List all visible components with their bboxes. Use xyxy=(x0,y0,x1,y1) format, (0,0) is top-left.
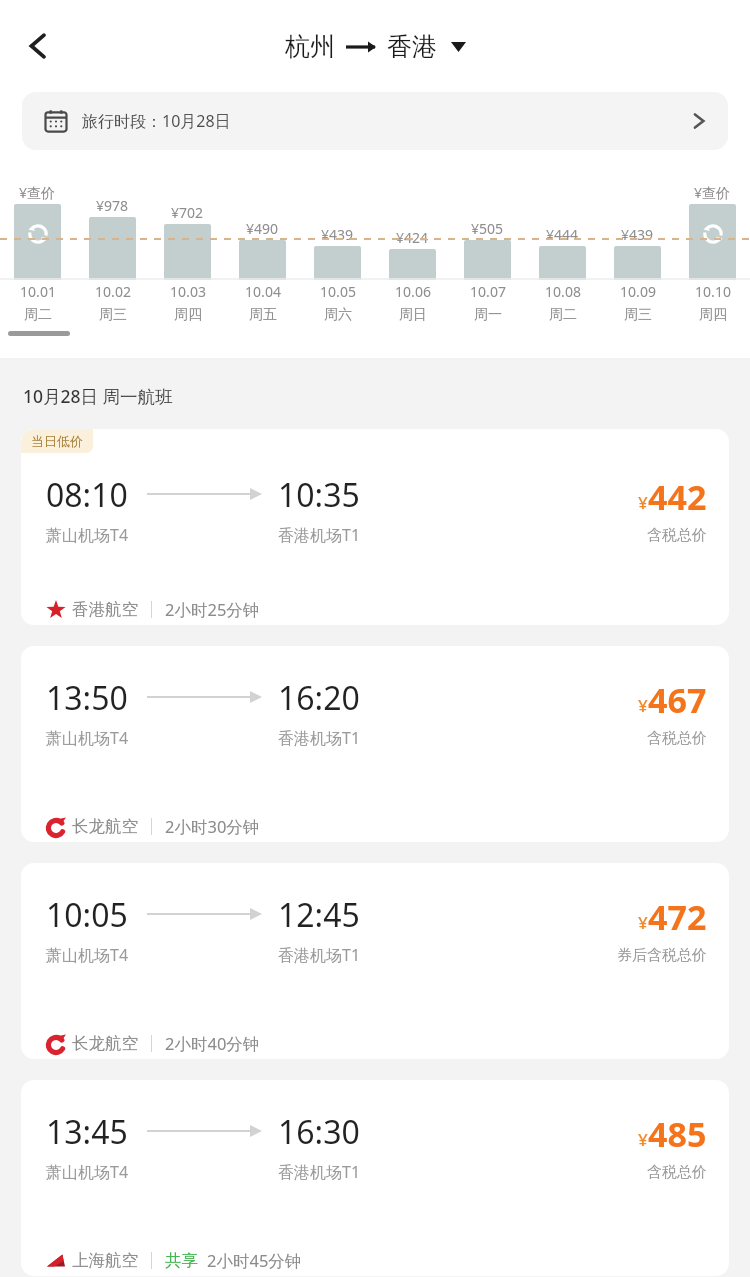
staticText: 周五 xyxy=(249,306,277,324)
staticText: 香港 xyxy=(387,31,437,62)
button[interactable]: 13:45 xyxy=(21,1080,729,1276)
button[interactable]: ¥查价 xyxy=(675,150,750,280)
staticText: 周四 xyxy=(699,306,727,324)
staticText: 16:20 xyxy=(278,676,360,720)
button[interactable]: 当日低价 xyxy=(21,429,729,625)
staticText: 16:30 xyxy=(278,1110,360,1154)
button[interactable]: ¥505 xyxy=(450,150,525,280)
staticText: 香港机场T1 xyxy=(278,944,361,966)
staticText: ¥439 xyxy=(621,225,654,244)
staticText: 485 xyxy=(648,1111,707,1157)
staticText: 12:45 xyxy=(278,893,360,937)
staticText: 10:05 xyxy=(46,893,128,937)
staticText: 香港机场T1 xyxy=(278,1161,361,1183)
staticText: 周四 xyxy=(174,306,202,324)
staticText: 13:45 xyxy=(46,1110,128,1154)
button[interactable]: 旅行时段：10月28日 xyxy=(22,92,728,150)
staticText: 含税总价 xyxy=(647,1163,707,1182)
staticText: 2小时25分钟 xyxy=(165,598,260,621)
staticText: 10.04 xyxy=(245,282,281,301)
staticText: 周三 xyxy=(624,306,652,324)
staticText: 10.07 xyxy=(470,282,506,301)
staticText: 香港机场T1 xyxy=(278,524,361,546)
staticText: 香港航空 xyxy=(72,599,138,620)
staticText: 杭州 xyxy=(285,31,335,62)
button[interactable]: Back xyxy=(10,18,66,74)
staticText: 10.08 xyxy=(545,282,581,301)
staticText: ¥ xyxy=(638,1128,648,1151)
staticText: ¥490 xyxy=(246,219,279,238)
staticText: ¥702 xyxy=(171,203,204,222)
staticText: 10:35 xyxy=(278,473,360,517)
staticText: ¥505 xyxy=(471,219,504,238)
staticText: 含税总价 xyxy=(647,729,707,748)
button[interactable]: ¥702 xyxy=(150,150,225,280)
staticText: 10.09 xyxy=(620,282,656,301)
staticText: 旅行时段：10月28日 xyxy=(82,110,231,132)
staticText: 萧山机场T4 xyxy=(46,1161,129,1183)
staticText: 10.03 xyxy=(170,282,206,301)
staticText: 共享 xyxy=(165,1250,198,1271)
staticText: 当日低价 xyxy=(31,433,83,449)
button[interactable]: ¥查价 xyxy=(0,150,75,280)
staticText: 2小时45分钟 xyxy=(207,1249,302,1272)
staticText: 08:10 xyxy=(46,473,128,517)
staticText: ¥查价 xyxy=(19,183,56,202)
staticText: 周二 xyxy=(549,306,577,324)
button[interactable]: ¥439 xyxy=(300,150,375,280)
button[interactable]: ¥978 xyxy=(75,150,150,280)
staticText: 香港机场T1 xyxy=(278,727,361,749)
staticText: 周日 xyxy=(399,306,427,324)
staticText: 券后含税总价 xyxy=(617,946,707,965)
staticText: 2小时40分钟 xyxy=(165,1032,260,1055)
staticText: ¥ xyxy=(638,911,648,934)
staticText: 10.01 xyxy=(20,282,56,301)
staticText: 上海航空 xyxy=(72,1250,138,1271)
staticText: ¥424 xyxy=(396,228,429,247)
staticText: 萧山机场T4 xyxy=(46,524,129,546)
button[interactable]: 13:50 xyxy=(21,646,729,842)
staticText: 442 xyxy=(648,474,707,520)
staticText: 含税总价 xyxy=(647,526,707,545)
staticText: 长龙航空 xyxy=(72,1033,138,1054)
staticText: 长龙航空 xyxy=(72,816,138,837)
button[interactable]: ¥424 xyxy=(375,150,450,280)
staticText: 萧山机场T4 xyxy=(46,727,129,749)
staticText: 周六 xyxy=(324,306,352,324)
staticText: ¥444 xyxy=(546,225,579,244)
button[interactable]: ¥439 xyxy=(600,150,675,280)
staticText: 萧山机场T4 xyxy=(46,944,129,966)
staticText: 周一 xyxy=(474,306,502,324)
staticText: ¥978 xyxy=(96,196,129,215)
staticText: ¥439 xyxy=(321,225,354,244)
staticText: 467 xyxy=(648,677,707,723)
button[interactable]: ¥444 xyxy=(525,150,600,280)
staticText: 10月28日 周一航班 xyxy=(23,384,173,408)
staticText: 周二 xyxy=(24,306,52,324)
staticText: ¥查价 xyxy=(694,183,731,202)
staticText: 周三 xyxy=(99,306,127,324)
staticText: 10.06 xyxy=(395,282,431,301)
staticText: 2小时30分钟 xyxy=(165,815,260,838)
button[interactable]: 杭州 xyxy=(285,31,466,62)
staticText: 10.05 xyxy=(320,282,356,301)
staticText: 472 xyxy=(648,894,707,940)
staticText: 10.10 xyxy=(695,282,731,301)
button[interactable]: ¥490 xyxy=(225,150,300,280)
staticText: 10.02 xyxy=(95,282,131,301)
staticText: ¥ xyxy=(638,694,648,717)
staticText: 13:50 xyxy=(46,676,128,720)
staticText: ¥ xyxy=(638,491,648,514)
button[interactable]: 10:05 xyxy=(21,863,729,1059)
